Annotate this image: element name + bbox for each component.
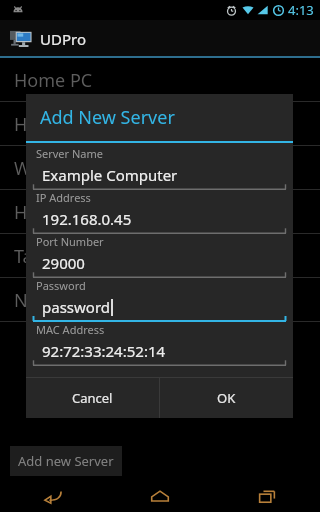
button[interactable]: password <box>32 294 287 322</box>
button[interactable]: 192.168.0.45 <box>32 206 287 234</box>
button[interactable]: Add new Server <box>10 446 122 476</box>
staticText: 192.168.0.45 <box>42 209 132 229</box>
button[interactable]: Home <box>125 480 195 512</box>
staticText: Work Desktop <box>14 156 133 181</box>
staticText: Home Laptop <box>14 112 129 137</box>
button[interactable]: Example Computer <box>32 162 287 190</box>
staticText: UDPro <box>40 29 86 49</box>
staticText: Password <box>36 278 86 293</box>
staticText: Port Number <box>36 234 104 249</box>
button[interactable]: OK <box>160 378 293 418</box>
staticText: MAC Address <box>36 322 105 337</box>
staticText: Cancel <box>72 389 113 407</box>
button[interactable]: 29000 <box>32 250 287 278</box>
button[interactable]: Back <box>18 480 88 512</box>
button[interactable]: 92:72:33:24:52:14 <box>32 338 287 366</box>
staticText: 4:13 <box>288 1 314 19</box>
staticText: password <box>42 297 110 317</box>
staticText: IP Address <box>36 190 91 205</box>
button[interactable]: Cancel <box>26 378 159 418</box>
staticText: 92:72:33:24:52:14 <box>42 341 166 361</box>
staticText: 29000 <box>42 253 85 273</box>
staticText: Example Computer <box>42 165 178 185</box>
staticText: NAS Server <box>14 288 108 313</box>
staticText: Add new Server <box>18 452 114 470</box>
staticText: Add New Server <box>40 105 175 130</box>
staticText: HTPC <box>14 200 60 225</box>
staticText: Server Name <box>36 146 104 161</box>
staticText: Tablet <box>14 244 66 269</box>
staticText: Home PC <box>14 68 93 93</box>
staticText: OK <box>217 389 236 407</box>
button[interactable]: Recent apps <box>232 480 302 512</box>
